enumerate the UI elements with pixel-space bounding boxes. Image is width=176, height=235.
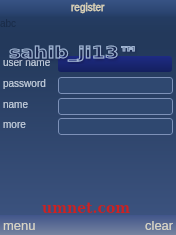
- staticText: menu: [3, 218, 36, 233]
- staticText: name: [3, 99, 29, 110]
- staticText: abc: [0, 18, 17, 29]
- button[interactable]: [58, 77, 173, 94]
- staticText: sahib_ji13™: [10, 45, 139, 64]
- staticText: umnet.com: [42, 200, 131, 216]
- staticText: clear: [145, 218, 174, 233]
- staticText: password: [3, 78, 46, 89]
- button[interactable]: menu: [0, 218, 39, 233]
- staticText: more: [3, 119, 26, 130]
- button[interactable]: [58, 56, 172, 72]
- button[interactable]: [58, 118, 173, 135]
- staticText: register: [71, 2, 105, 13]
- staticText: user name: [3, 57, 51, 68]
- staticText: sahib_ji13™: [9, 43, 138, 62]
- button[interactable]: clear: [142, 218, 176, 233]
- button[interactable]: [58, 98, 173, 115]
